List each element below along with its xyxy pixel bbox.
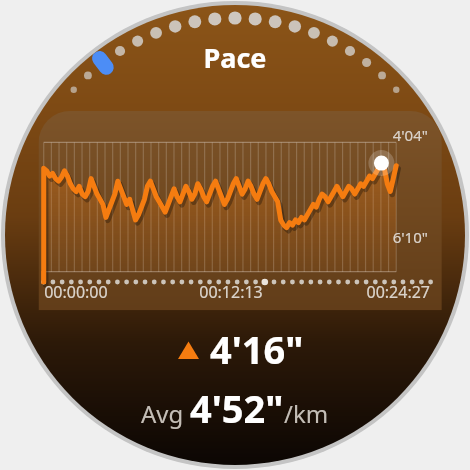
- button[interactable]: Pace chart: [0, 0, 470, 470]
